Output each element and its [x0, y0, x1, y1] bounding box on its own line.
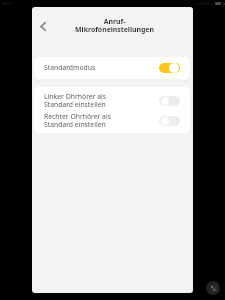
button[interactable]: Accessibility menu [206, 281, 220, 295]
button[interactable]: Standardmodus [34, 57, 190, 79]
button[interactable]: Linker Ohrhörer als Standard einstellen [34, 90, 190, 110]
staticText: Anruf- Mikrofoneinstellungen [75, 17, 154, 34]
staticText: Linker Ohrhörer als Standard einstellen [44, 92, 154, 109]
button[interactable]: Rechter Ohrhörer als Standard einstellen [34, 110, 190, 130]
button[interactable]: Back [34, 17, 52, 35]
staticText: ▾ 4G 85 % [197, 1, 214, 6]
staticText: Standardmodus [44, 63, 154, 72]
staticText: 18:01 [2, 1, 12, 6]
staticText: Rechter Ohrhörer als Standard einstellen [44, 112, 154, 129]
